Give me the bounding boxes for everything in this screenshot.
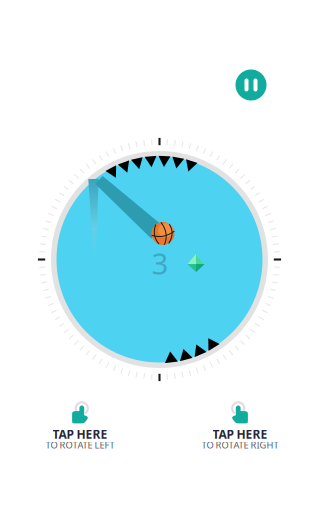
button[interactable]: Pause [229,63,273,107]
staticText: 3 [151,243,168,282]
staticText: TO ROTATE RIGHT [201,439,278,451]
button[interactable]: TAP HERE [6,398,154,460]
staticText: TO ROTATE LEFT [45,439,114,451]
staticText: TAP HERE [52,426,107,442]
button[interactable]: TAP HERE [166,398,314,460]
staticText: TAP HERE [212,426,267,442]
